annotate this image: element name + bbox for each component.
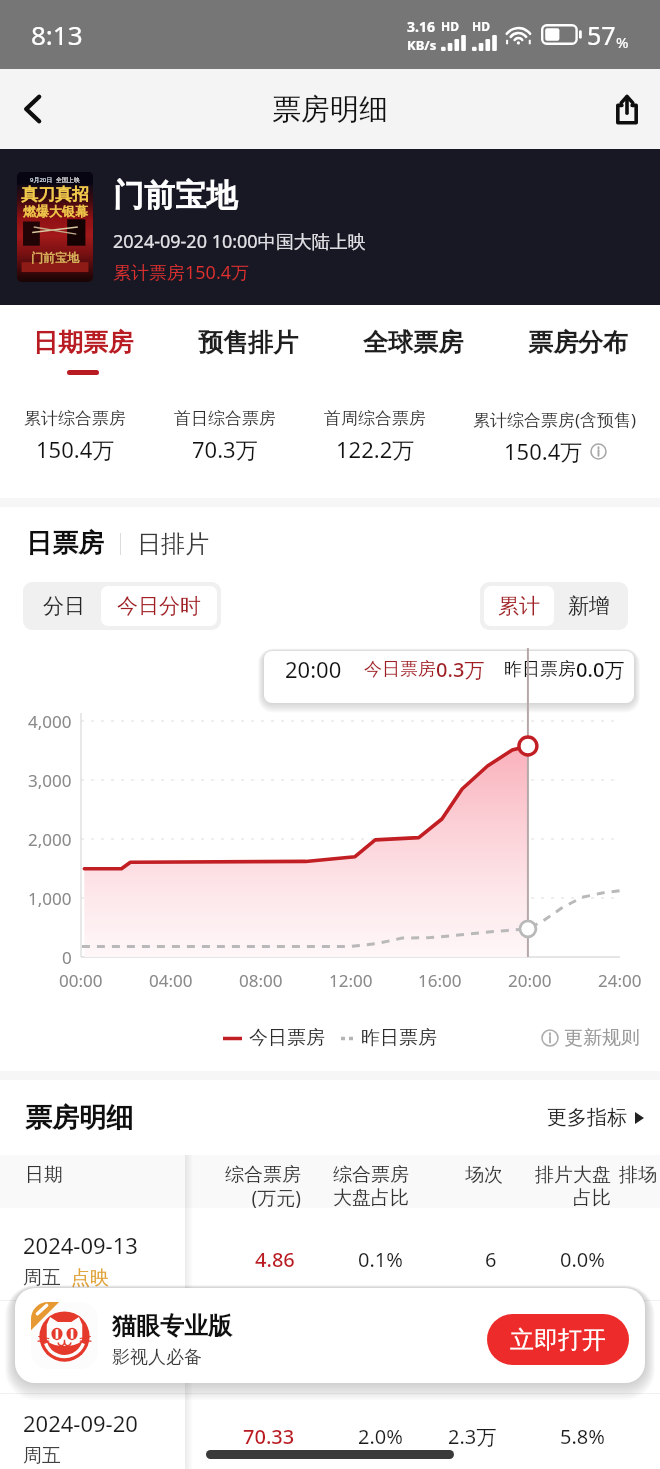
staticText: 更新规则	[564, 1026, 640, 1050]
staticText: 0.0%	[560, 1246, 605, 1273]
staticText: 2,000	[28, 828, 72, 851]
staticText: 点映	[71, 1266, 109, 1290]
staticText: 累计综合票房	[24, 408, 126, 429]
staticText: 5.8%	[560, 1423, 605, 1450]
button[interactable]: 票房分布	[495, 305, 660, 386]
staticText: 日期	[25, 1163, 63, 1187]
staticText: 昨日票房	[361, 1026, 437, 1050]
staticText: 2024-09-13	[23, 1230, 138, 1260]
button[interactable]: Movie poster	[17, 172, 93, 282]
staticText: 周五	[23, 1444, 61, 1468]
button[interactable]: 累计	[484, 586, 554, 626]
staticText: 0.1%	[560, 1339, 605, 1366]
staticText: 4.86	[255, 1246, 295, 1273]
staticText: 2024-09-20 10:00中国大陆上映	[113, 229, 366, 254]
button[interactable]: 猫眼专业版	[15, 1288, 645, 1383]
staticText: 真刀真招	[21, 184, 89, 205]
staticText: 立即打开	[510, 1325, 606, 1355]
staticText: 70.33	[243, 1423, 295, 1450]
staticText: 12:00	[329, 969, 373, 992]
button[interactable]: 日期票房	[0, 305, 165, 386]
staticText: 燃爆大银幕	[23, 203, 88, 219]
staticText: 累计票房150.4万	[113, 260, 250, 285]
button[interactable]: 累计综合票房	[0, 386, 150, 498]
staticText: 2024-09-16	[23, 1323, 138, 1353]
button[interactable]: 2024-09-20	[0, 1394, 660, 1469]
staticText: 更多指标	[547, 1105, 627, 1130]
staticText: 分日	[43, 593, 85, 619]
staticText: 综合票房 (万元)	[225, 1163, 301, 1208]
staticText: 全球票房	[363, 327, 463, 358]
button[interactable]: 今日分时	[101, 586, 217, 626]
staticText: 70.3万	[192, 434, 258, 464]
staticText: %	[616, 32, 629, 52]
button[interactable]: 首日综合票房	[150, 386, 300, 498]
staticText: 04:00	[149, 969, 193, 992]
staticText: 2.0%	[358, 1423, 403, 1450]
staticText: 全国上映	[56, 176, 80, 184]
staticText: 0.1%	[358, 1246, 403, 1273]
staticText: 门前宝地	[31, 250, 79, 265]
staticText: 3,000	[28, 769, 72, 792]
button[interactable]: 新增	[554, 586, 624, 626]
button[interactable]: 立即打开	[487, 1314, 629, 1365]
button[interactable]: Back	[0, 69, 66, 149]
button[interactable]: 累计综合票房(含预售)	[450, 386, 660, 498]
staticText: 周一	[23, 1359, 61, 1383]
staticText: 猫眼专业版	[112, 1311, 232, 1341]
staticText: 8:13	[31, 17, 83, 52]
staticText: 20:00	[508, 969, 552, 992]
staticText: 16:00	[418, 969, 462, 992]
staticText: 场次	[465, 1163, 503, 1187]
staticText: 08:00	[239, 969, 283, 992]
staticText: 今日分时	[117, 593, 201, 619]
staticText: 20:00	[285, 654, 342, 684]
staticText: 今日票房	[249, 1026, 325, 1050]
staticText: 1,000	[28, 887, 72, 910]
staticText: 00:00	[59, 969, 103, 992]
button[interactable]: 2024-09-13	[0, 1208, 660, 1300]
button[interactable]: 全球票房	[330, 305, 495, 386]
staticText: 票房明细	[25, 1101, 133, 1135]
staticText: 3.16	[407, 17, 435, 36]
button[interactable]: 更新规则	[541, 1026, 640, 1050]
staticText: 综合票房 大盘占比	[333, 1163, 409, 1208]
button[interactable]: 预售排片	[165, 305, 330, 386]
staticText: 日票房	[26, 527, 104, 560]
staticText: 周五	[23, 1266, 61, 1290]
staticText: 9月20日	[30, 176, 53, 184]
staticText: 预售排片	[198, 327, 298, 358]
staticText: 57	[587, 18, 616, 52]
staticText: 日期票房	[33, 327, 133, 358]
staticText: 2024-09-20	[23, 1408, 138, 1438]
button[interactable]: 2024-09-16	[0, 1301, 660, 1393]
staticText: 点映	[71, 1359, 109, 1383]
staticText: 首日综合票房	[174, 408, 276, 429]
staticText: 今日票房	[364, 658, 436, 681]
staticText: 票房分布	[528, 327, 628, 358]
staticText: 18	[474, 1339, 497, 1366]
staticText: 24:00	[598, 969, 642, 992]
button[interactable]: 更多指标	[547, 1105, 644, 1130]
staticText: 首周综合票房	[324, 408, 426, 429]
button[interactable]: 首周综合票房	[300, 386, 450, 498]
staticText: HD	[472, 18, 490, 34]
staticText: 影视人必备	[112, 1346, 202, 1369]
button[interactable]: 日排片	[137, 529, 209, 559]
staticText: 4,000	[28, 710, 72, 733]
staticText: 票房明细	[272, 91, 388, 128]
staticText: 新增	[568, 593, 610, 619]
staticText: 122.2万	[336, 434, 415, 464]
staticText: 0.3万	[436, 656, 485, 683]
button[interactable]: 分日	[27, 586, 101, 626]
staticText: 0.0万	[576, 656, 625, 683]
staticText: 6	[485, 1246, 497, 1273]
button[interactable]: Share	[594, 69, 660, 149]
staticText: 排场	[619, 1163, 657, 1187]
staticText: KB/s	[407, 36, 437, 54]
staticText: 150.4万	[504, 436, 583, 466]
staticText: 150.4万	[36, 434, 115, 464]
staticText: 2.3万	[448, 1423, 497, 1450]
